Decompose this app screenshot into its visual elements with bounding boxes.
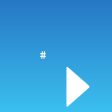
- button[interactable]: Play: [66, 66, 90, 107]
